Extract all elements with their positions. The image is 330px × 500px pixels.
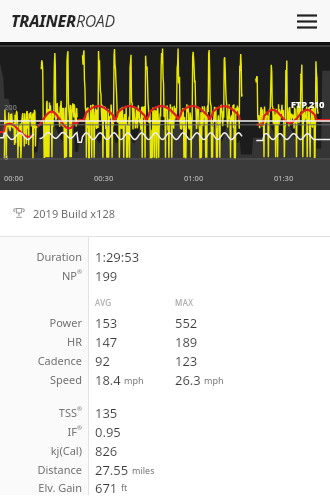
staticText: 552 <box>175 314 198 332</box>
staticText: 01:30 <box>274 173 294 183</box>
staticText: 27.55 <box>95 461 129 479</box>
staticText: ft <box>121 481 128 493</box>
staticText: 01:00 <box>184 173 204 183</box>
button[interactable]: TSS <box>0 403 330 422</box>
staticText: 153 <box>95 314 118 332</box>
staticText: Power <box>49 315 82 330</box>
staticText: 826 <box>95 442 118 460</box>
staticText: Speed <box>50 372 82 387</box>
staticText: mph <box>124 374 144 386</box>
staticText: 123 <box>175 352 198 370</box>
button[interactable]: NP <box>0 266 330 285</box>
staticText: 18.4 <box>95 371 121 389</box>
button[interactable]: Distance <box>0 460 330 479</box>
button[interactable]: kj(Cal) <box>0 441 330 460</box>
staticText: Duration <box>36 249 82 264</box>
staticText: AVG <box>95 297 112 308</box>
staticText: 00:30 <box>94 173 114 183</box>
button[interactable]: Open navigation menu <box>294 8 320 34</box>
button[interactable]: IF <box>0 422 330 441</box>
staticText: ® <box>77 268 82 276</box>
staticText: 189 <box>175 333 198 351</box>
staticText: miles <box>132 464 155 476</box>
staticText: 135 <box>95 404 118 422</box>
button[interactable]: Elv. Gain <box>0 479 330 495</box>
staticText: TRAINER <box>11 10 76 32</box>
staticText: 0.95 <box>95 423 121 441</box>
button[interactable]: Cadence <box>0 351 330 370</box>
staticText: IF <box>67 424 77 439</box>
staticText: 671 <box>95 479 118 495</box>
button[interactable]: Power <box>0 313 330 332</box>
button[interactable]: Duration <box>0 247 330 266</box>
staticText: ROAD <box>76 10 115 32</box>
staticText: 200 <box>4 102 17 112</box>
staticText: ® <box>77 424 82 432</box>
staticText: 2019 Build x128 <box>33 206 115 221</box>
staticText: 1:29:53 <box>95 248 140 266</box>
staticText: 00:00 <box>4 173 24 183</box>
button[interactable]: Workout power chart <box>0 42 330 190</box>
staticText: ® <box>77 405 82 413</box>
staticText: MAX <box>175 297 194 308</box>
button[interactable]: Speed <box>0 370 330 389</box>
staticText: 147 <box>95 333 118 351</box>
button[interactable]: HR <box>0 332 330 351</box>
staticText: Distance <box>37 462 82 477</box>
staticText: 199 <box>95 267 118 285</box>
button[interactable]: TRAINER <box>11 10 115 32</box>
staticText: FTP 210 <box>291 98 325 110</box>
staticText: NP <box>61 268 77 283</box>
staticText: kj(Cal) <box>50 443 82 458</box>
button[interactable]: 2019 Build x128 <box>0 190 330 236</box>
staticText: 26.3 <box>175 371 201 389</box>
staticText: 0 <box>4 152 9 162</box>
staticText: HR <box>67 334 82 349</box>
staticText: Cadence <box>37 353 82 368</box>
staticText: 92 <box>95 352 110 370</box>
staticText: mph <box>204 374 224 386</box>
staticText: Elv. Gain <box>38 480 82 495</box>
staticText: TSS <box>58 405 77 420</box>
